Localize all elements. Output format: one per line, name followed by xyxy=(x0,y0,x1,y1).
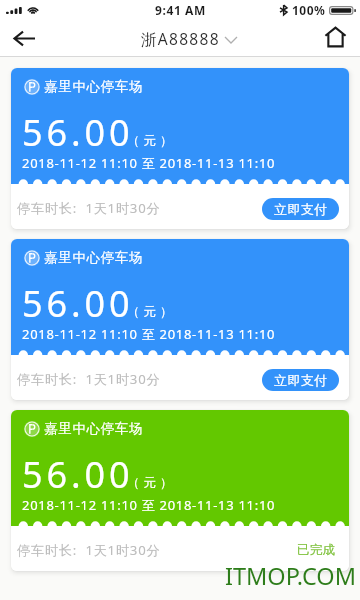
staticText: 立即支付 xyxy=(274,372,328,388)
staticText: 停车时长: 1天1时30分 xyxy=(17,199,161,217)
staticText: 立即支付 xyxy=(274,201,328,217)
staticText: （元） xyxy=(127,475,177,491)
staticText: 停车时长: 1天1时30分 xyxy=(17,541,161,559)
staticText: 9:41 AM xyxy=(155,2,206,18)
button[interactable]: 浙A88888 xyxy=(137,28,241,49)
staticText: 56.00 xyxy=(22,450,134,499)
staticText: 2018-11-12 11:10 至 2018-11-13 11:10 xyxy=(22,154,276,172)
staticText: 56.00 xyxy=(22,108,134,157)
staticText: （元） xyxy=(127,133,177,149)
staticText: 嘉里中心停车场 xyxy=(44,249,144,266)
staticText: 浙A88888 xyxy=(141,28,220,49)
staticText: 嘉里中心停车场 xyxy=(44,78,144,95)
staticText: 停车时长: 1天1时30分 xyxy=(17,370,161,388)
button[interactable]: 立即支付 xyxy=(262,369,339,391)
staticText: 嘉里中心停车场 xyxy=(44,420,144,437)
staticText: 2018-11-12 11:10 至 2018-11-13 11:10 xyxy=(22,325,276,343)
staticText: 56.00 xyxy=(22,279,134,328)
button[interactable]: Home xyxy=(315,20,355,57)
staticText: 2018-11-12 11:10 至 2018-11-13 11:10 xyxy=(22,496,276,514)
button[interactable]: Back xyxy=(0,20,48,57)
staticText: （元） xyxy=(127,304,177,320)
staticText: 100% xyxy=(292,2,326,18)
button[interactable]: 已完成 xyxy=(297,542,336,558)
staticText: ITMOP.COM xyxy=(225,560,357,592)
button[interactable]: 立即支付 xyxy=(262,198,339,220)
